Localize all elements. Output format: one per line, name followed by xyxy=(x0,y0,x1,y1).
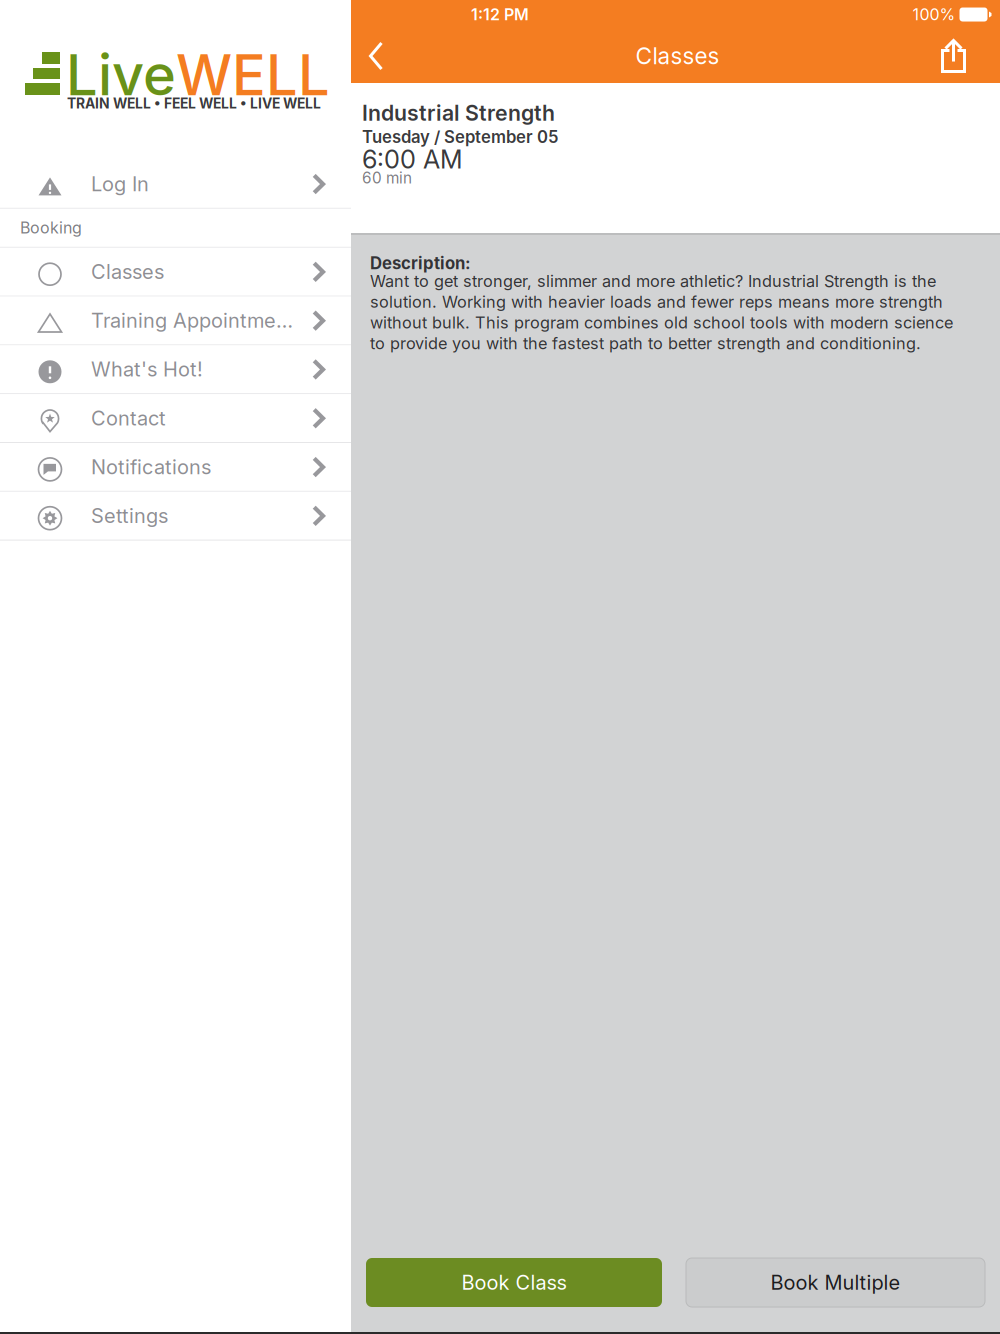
staticText: 1:12 PM xyxy=(471,5,529,24)
staticText: Settings xyxy=(91,504,168,528)
button[interactable]: Classes xyxy=(0,248,351,297)
button[interactable]: Notifications xyxy=(0,443,351,492)
button[interactable]: Contact xyxy=(0,394,351,443)
button[interactable]: Log In xyxy=(0,160,351,209)
button[interactable]: Back xyxy=(351,29,403,82)
button[interactable]: Book Multiple xyxy=(686,1258,985,1307)
staticText: 6:00 AM xyxy=(362,144,463,175)
staticText: Live xyxy=(66,41,176,109)
staticText: Industrial Strength xyxy=(362,100,555,126)
staticText: Log In xyxy=(91,172,149,196)
staticText: WELL xyxy=(176,41,330,109)
staticText: Description: xyxy=(370,253,471,273)
staticText: Classes xyxy=(91,260,164,284)
staticText: Tuesday / September 05 xyxy=(362,127,558,147)
button[interactable]: What's Hot! xyxy=(0,345,351,394)
staticText: Notifications xyxy=(91,455,211,479)
staticText: Booking xyxy=(20,218,82,237)
staticText: What's Hot! xyxy=(91,357,203,381)
staticText: 60 min xyxy=(362,169,412,187)
staticText: 100% xyxy=(912,5,955,24)
button[interactable]: Share xyxy=(930,31,1000,80)
staticText: TRAIN WELL • FEEL WELL • LIVE WELL xyxy=(67,95,321,112)
button[interactable]: Book Class xyxy=(366,1258,662,1307)
button[interactable]: Settings xyxy=(0,492,351,541)
staticText: Want to get stronger, slimmer and more a… xyxy=(370,271,953,353)
staticText: Training Appointme… xyxy=(91,308,293,333)
staticText: Book Class xyxy=(461,1270,566,1295)
button[interactable]: Training Appointme… xyxy=(0,297,351,345)
staticText: Book Multiple xyxy=(770,1270,900,1295)
staticText: Classes xyxy=(635,42,719,70)
staticText: Contact xyxy=(91,406,166,430)
